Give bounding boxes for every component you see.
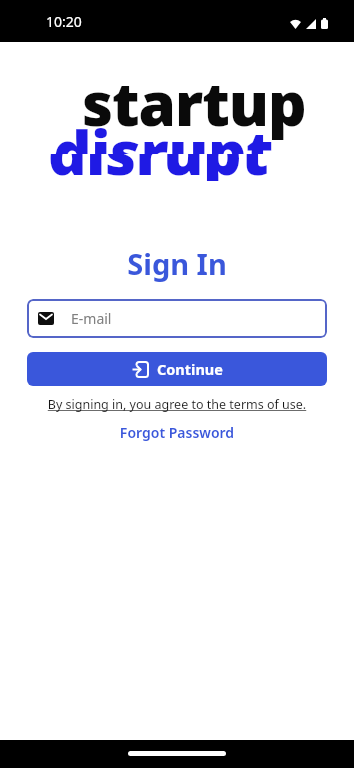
staticText: startup — [82, 62, 306, 144]
button[interactable]: E-mail — [27, 299, 327, 338]
button[interactable]: Forgot Password — [0, 423, 354, 442]
staticText: 10:20 — [46, 12, 82, 31]
button[interactable]: By signing in, you agree to the terms of… — [0, 396, 354, 413]
staticText: disrupt — [48, 154, 269, 181]
staticText: E-mail — [71, 309, 112, 328]
button[interactable]: Continue — [27, 352, 327, 386]
staticText: disrupt — [53, 111, 274, 154]
staticText: Continue — [157, 359, 223, 379]
staticText: Sign In — [0, 244, 354, 283]
